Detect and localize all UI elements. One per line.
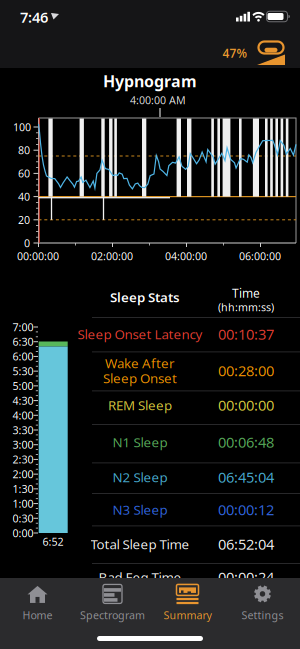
staticText: 3:30: [12, 423, 33, 437]
staticText: N3 Sleep: [112, 501, 167, 518]
staticText: 80: [18, 143, 30, 157]
button[interactable]: Headband battery: [257, 40, 285, 65]
staticText: 6:00: [12, 349, 33, 363]
staticText: 00:00:00: [17, 249, 59, 263]
staticText: Summary: [163, 608, 211, 622]
staticText: 00:00:12: [218, 500, 274, 519]
staticText: 06:45:04: [218, 467, 274, 487]
staticText: 00:00:24: [218, 567, 274, 587]
staticText: 0: [24, 236, 30, 250]
staticText: 00:06:48: [218, 432, 274, 452]
staticText: 0:30: [12, 511, 33, 525]
staticText: 7:00: [12, 320, 33, 334]
staticText: Time: [232, 285, 260, 301]
staticText: Sleep Stats: [110, 288, 180, 306]
staticText: 4:30: [12, 393, 33, 408]
staticText: Home: [22, 608, 52, 622]
staticText: 7:46: [20, 7, 48, 27]
staticText: 1:00: [12, 496, 33, 511]
staticText: 2:00: [12, 467, 33, 481]
button[interactable]: Home: [0, 580, 75, 626]
staticText: Settings: [241, 608, 283, 622]
staticText: 02:00:00: [91, 249, 133, 263]
staticText: N2 Sleep: [112, 468, 167, 486]
staticText: 6:52: [42, 534, 63, 549]
staticText: 40: [18, 189, 30, 204]
staticText: Total Sleep Time: [90, 535, 189, 553]
staticText: 0:00: [12, 526, 33, 540]
staticText: Hypnogram: [103, 70, 197, 92]
staticText: 04:00:00: [165, 249, 207, 263]
staticText: 20: [18, 213, 30, 227]
staticText: 60: [18, 166, 30, 180]
staticText: 3:00: [12, 438, 33, 452]
staticText: Bad Eeg Time: [98, 568, 181, 586]
staticText: (hh:mm:ss): [218, 300, 274, 314]
staticText: 00:28:00: [218, 361, 274, 380]
staticText: 00:00:00: [218, 395, 274, 415]
staticText: 5:00: [12, 379, 33, 393]
button[interactable]: Settings: [225, 580, 300, 626]
staticText: Sleep Onset: [103, 369, 177, 387]
staticText: 5:30: [12, 364, 33, 378]
staticText: 6:30: [12, 335, 33, 349]
staticText: 1:30: [12, 482, 33, 496]
button[interactable]: Summary: [150, 580, 225, 626]
staticText: 4:00: [12, 408, 33, 422]
button[interactable]: Spectrogram: [75, 580, 150, 626]
staticText: 06:00:00: [239, 249, 281, 263]
staticText: REM Sleep: [108, 396, 172, 414]
staticText: 47%: [222, 45, 247, 61]
staticText: Spectrogram: [80, 608, 145, 622]
staticText: 06:52:04: [218, 534, 274, 554]
staticText: Sleep Onset Latency: [77, 325, 202, 343]
staticText: 00:10:37: [218, 324, 274, 344]
staticText: 100: [13, 120, 31, 134]
staticText: N1 Sleep: [112, 433, 167, 451]
staticText: 4:00:00 AM: [130, 93, 186, 107]
staticText: 2:30: [12, 452, 33, 466]
staticText: Wake After: [105, 354, 175, 372]
